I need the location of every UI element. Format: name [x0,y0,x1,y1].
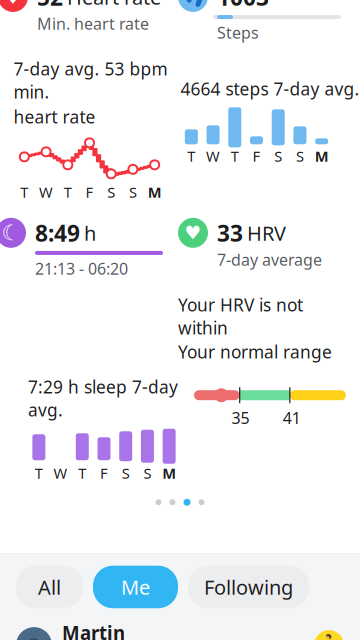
staticText: HRV [247,220,286,246]
staticText: Your normal range [178,340,332,363]
staticText: S [274,146,282,166]
button[interactable]: Me [93,566,178,608]
staticText: 52 [37,0,63,12]
staticText: W [54,463,68,483]
staticText: 7-day avg. 53 bpm min. [13,57,167,103]
staticText: F [252,146,260,166]
staticText: heart rate [13,105,95,128]
staticText: 21:13 - 06:20 [35,258,128,279]
button[interactable]: Following [188,566,309,608]
staticText: 8:49 [35,218,80,248]
staticText: S [296,146,304,166]
staticText: W [39,182,53,202]
staticText: 4664 steps 7-day avg. [180,77,359,100]
staticText: 7:29 h sleep 7-day avg. [28,375,178,421]
staticText: 35 [232,407,250,428]
staticText: M [162,463,176,483]
staticText: S [107,182,115,202]
staticText: 👣 [181,0,204,8]
staticText: T [187,146,195,166]
staticText: 7-day average [217,249,322,270]
staticText: Min. heart rate [37,13,149,34]
staticText: Heart rate [67,0,161,10]
staticText: T [64,182,72,202]
staticText: T [78,463,86,483]
staticText: W [206,146,220,166]
staticText: S [129,182,137,202]
staticText: Me [121,574,150,600]
staticText: Steps [217,22,259,43]
staticText: Following [204,574,293,600]
staticText: S [143,463,151,483]
staticText: 🏃 [316,634,341,640]
staticText: 33 [217,218,243,248]
button[interactable]: Martin [0,620,360,640]
staticText: All [38,574,61,600]
staticText: ♥ [4,0,22,8]
staticText: T [35,463,43,483]
staticText: ☾ [1,221,20,245]
staticText: F [100,463,108,483]
staticText: h [84,220,96,246]
staticText: Your HRV is not within [178,293,303,339]
button[interactable]: All [16,566,83,608]
staticText: F [85,182,93,202]
staticText: ♥ [184,222,201,243]
staticText: M [315,146,329,166]
staticText: Martin [62,620,125,640]
staticText: T [231,146,239,166]
staticText: 1003 [217,0,269,12]
staticText: T [20,182,28,202]
staticText: S [122,463,130,483]
staticText: M [148,182,162,202]
staticText: 41 [283,407,301,428]
